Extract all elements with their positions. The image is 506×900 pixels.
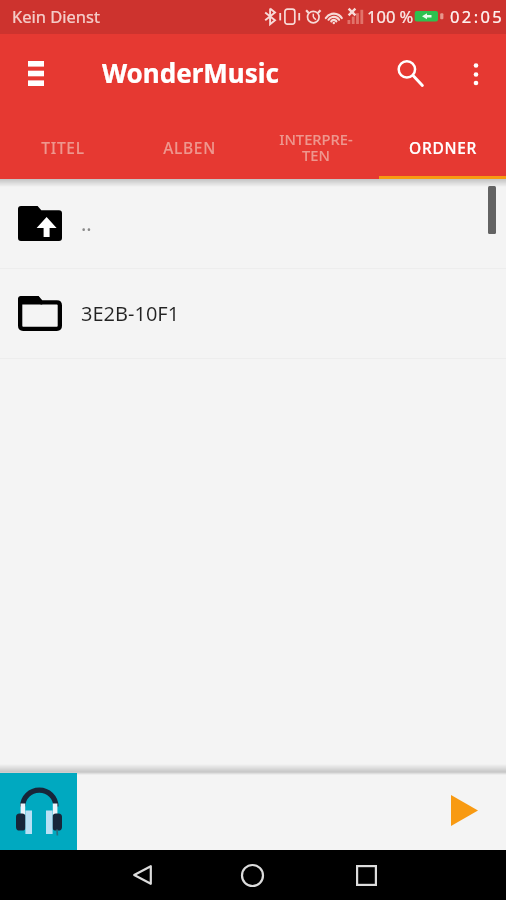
staticText: INTERPRE- TEN — [279, 129, 353, 166]
staticText: 3E2B-10F1 — [81, 300, 180, 327]
staticText: WonderMusic — [102, 55, 280, 90]
staticText: TITEL — [41, 137, 85, 158]
button[interactable]: .. — [0, 179, 506, 268]
button[interactable]: TITEL — [0, 115, 126, 179]
button[interactable]: Recent apps — [338, 850, 394, 900]
button[interactable]: Search — [384, 47, 436, 99]
staticText: 02:05 — [450, 5, 505, 27]
staticText: .. — [81, 210, 92, 237]
staticText: Kein Dienst — [12, 5, 100, 27]
button[interactable]: INTERPRE- TEN — [252, 115, 379, 179]
button[interactable]: Back — [114, 850, 170, 900]
button[interactable]: More options — [452, 50, 500, 98]
staticText: ALBEN — [163, 137, 216, 158]
button[interactable]: Play — [434, 773, 494, 850]
button[interactable]: Navigation menu — [8, 45, 64, 101]
button[interactable]: Now playing — [0, 773, 77, 850]
button[interactable]: ORDNER — [379, 115, 506, 179]
button[interactable]: Home — [224, 850, 280, 900]
button[interactable]: 3E2B-10F1 — [0, 269, 506, 358]
staticText: ORDNER — [409, 137, 477, 158]
staticText: 100 % — [367, 5, 414, 27]
button[interactable]: ALBEN — [126, 115, 252, 179]
